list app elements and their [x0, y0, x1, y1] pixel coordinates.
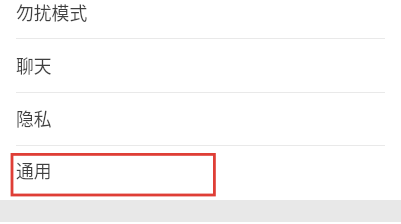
staticText: 通用	[16, 157, 52, 183]
button[interactable]: 隐私	[0, 92, 401, 146]
staticText: 勿扰模式	[16, 0, 88, 25]
button[interactable]: 通用	[0, 145, 401, 199]
button[interactable]: 勿扰模式	[0, 0, 401, 39]
staticText: 隐私	[16, 105, 52, 131]
button[interactable]: 聊天	[0, 38, 401, 92]
staticText: 聊天	[16, 52, 52, 78]
